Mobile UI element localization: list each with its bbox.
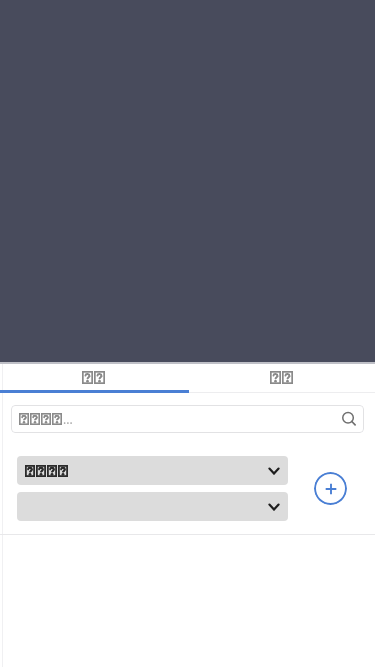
- button[interactable]: [0, 364, 187, 390]
- button[interactable]: [187, 364, 375, 390]
- button[interactable]: [17, 456, 288, 485]
- staticText: ...: [63, 411, 73, 427]
- button[interactable]: [17, 492, 288, 521]
- button[interactable]: ...: [11, 405, 364, 433]
- button[interactable]: Add: [314, 472, 347, 505]
- other: Search: [341, 411, 357, 427]
